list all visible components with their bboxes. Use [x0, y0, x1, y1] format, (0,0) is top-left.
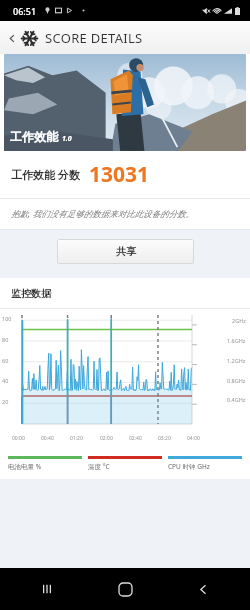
- staticText: 1.6GHz: [227, 337, 246, 344]
- button[interactable]: Back: [4, 30, 20, 46]
- staticText: 02:40: [129, 435, 142, 442]
- staticText: 监控数据: [11, 287, 51, 300]
- staticText: 13031: [89, 160, 150, 189]
- staticText: 04:00: [187, 435, 200, 442]
- staticText: 共享: [116, 245, 136, 258]
- staticText: 40: [2, 377, 9, 384]
- staticText: 03:20: [158, 435, 171, 442]
- button[interactable]: Back: [190, 576, 216, 602]
- staticText: 80: [2, 336, 9, 343]
- staticText: 00:40: [41, 435, 54, 442]
- staticText: 00:00: [12, 435, 25, 442]
- staticText: SCORE DETAILS: [45, 29, 143, 47]
- staticText: 抱歉, 我们没有足够的数据来对比此设备的分数。: [11, 208, 194, 220]
- staticText: 0.4GHz: [227, 396, 246, 403]
- staticText: 0.8GHz: [227, 377, 246, 384]
- button[interactable]: Home: [112, 576, 138, 602]
- staticText: 06:51: [13, 5, 37, 17]
- staticText: 100: [2, 315, 12, 322]
- staticText: 工作效能 分数: [11, 167, 80, 182]
- staticText: 电池电量 %: [8, 462, 42, 471]
- staticText: 01:20: [70, 435, 83, 442]
- button[interactable]: 共享: [57, 239, 194, 264]
- staticText: 工作效能: [10, 129, 58, 144]
- staticText: 温度 °C: [88, 462, 110, 471]
- staticText: 1.0: [62, 134, 72, 144]
- staticText: 60: [2, 357, 9, 364]
- button[interactable]: Recent apps: [34, 576, 60, 602]
- staticText: 20: [2, 398, 9, 405]
- staticText: CPU 时钟 GHz: [168, 462, 210, 471]
- staticText: 2GHz: [232, 317, 246, 324]
- staticText: 02:00: [100, 435, 113, 442]
- staticText: 1.2GHz: [227, 357, 246, 364]
